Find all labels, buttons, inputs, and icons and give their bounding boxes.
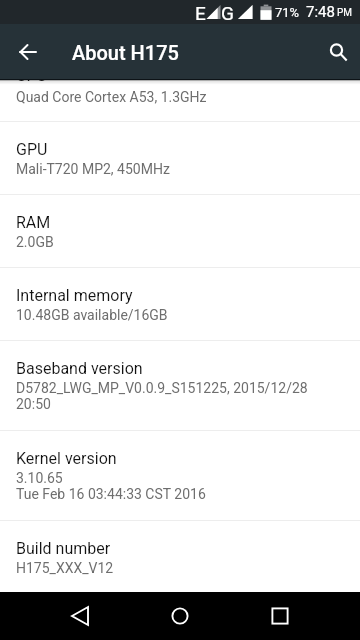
button[interactable]: Recents bbox=[240, 592, 320, 640]
button[interactable]: GPU bbox=[0, 122, 360, 194]
staticText: H175_XXX_V12 bbox=[16, 560, 114, 576]
staticText: Quad Core Cortex A53, 1.3GHz bbox=[16, 89, 207, 105]
staticText: D5782_LWG_MP_V0.0.9_S151225, 2015/12/28 bbox=[16, 380, 308, 396]
staticText: 7:48 bbox=[306, 3, 335, 21]
button[interactable]: Search bbox=[304, 24, 360, 80]
staticText: RAM bbox=[16, 213, 51, 232]
staticText: 10.48GB available/16GB bbox=[16, 307, 168, 323]
button[interactable]: Home bbox=[140, 592, 220, 640]
staticText: E bbox=[195, 2, 206, 24]
staticText: GPU bbox=[16, 140, 48, 159]
staticText: 20:50 bbox=[16, 396, 51, 412]
button[interactable]: Back bbox=[0, 24, 56, 80]
staticText: Baseband version bbox=[16, 359, 143, 378]
button[interactable]: Back bbox=[40, 592, 120, 640]
staticText: 71% bbox=[275, 5, 300, 20]
button[interactable]: CPU bbox=[0, 80, 360, 121]
staticText: 3.10.65 bbox=[16, 470, 63, 486]
button[interactable]: Internal memory bbox=[0, 268, 360, 340]
staticText: Internal memory bbox=[16, 286, 133, 305]
button[interactable]: RAM bbox=[0, 195, 360, 267]
button[interactable]: Baseband version bbox=[0, 341, 360, 430]
staticText: PM bbox=[337, 7, 353, 19]
staticText: CPU bbox=[16, 80, 47, 85]
staticText: Mali-T720 MP2, 450MHz bbox=[16, 161, 170, 177]
staticText: G bbox=[221, 2, 234, 24]
staticText: Build number bbox=[16, 539, 111, 558]
staticText: Kernel version bbox=[16, 449, 117, 468]
button[interactable]: Build number bbox=[0, 521, 360, 592]
staticText: About H175 bbox=[72, 41, 179, 64]
staticText: 2.0GB bbox=[16, 234, 54, 250]
button[interactable]: Kernel version bbox=[0, 431, 360, 520]
staticText: Tue Feb 16 03:44:33 CST 2016 bbox=[16, 486, 206, 502]
